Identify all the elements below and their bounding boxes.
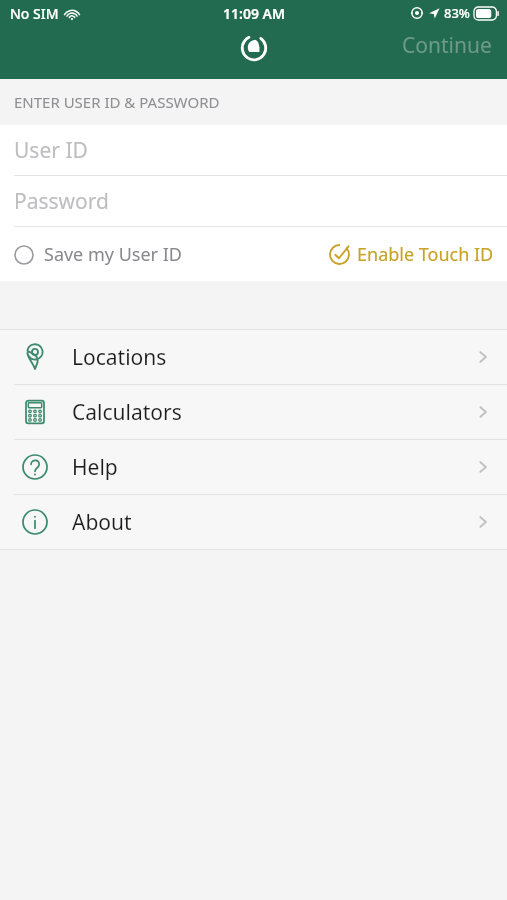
- staticText: Locations: [72, 343, 167, 372]
- staticText: 11:09 AM: [223, 4, 285, 23]
- button[interactable]: Home: [239, 33, 269, 63]
- staticText: No SIM: [10, 4, 59, 23]
- button[interactable]: Calculators: [0, 385, 507, 439]
- staticText: Password: [14, 187, 109, 216]
- button[interactable]: Enable Touch ID: [321, 236, 507, 273]
- button[interactable]: About: [0, 495, 507, 549]
- staticText: Enable Touch ID: [357, 242, 494, 267]
- button[interactable]: Continue: [400, 27, 494, 64]
- staticText: Calculators: [72, 398, 182, 427]
- staticText: ENTER USER ID & PASSWORD: [14, 92, 220, 112]
- staticText: About: [72, 508, 132, 537]
- staticText: User ID: [14, 136, 88, 165]
- button[interactable]: Help: [0, 440, 507, 494]
- button[interactable]: Save my User ID: [0, 236, 190, 273]
- staticText: Continue: [402, 31, 492, 60]
- staticText: Save my User ID: [44, 242, 182, 267]
- staticText: Help: [72, 453, 118, 482]
- button[interactable]: Locations: [0, 330, 507, 384]
- button[interactable]: Password: [0, 176, 507, 226]
- staticText: 83%: [444, 4, 470, 22]
- button[interactable]: User ID: [0, 125, 507, 175]
